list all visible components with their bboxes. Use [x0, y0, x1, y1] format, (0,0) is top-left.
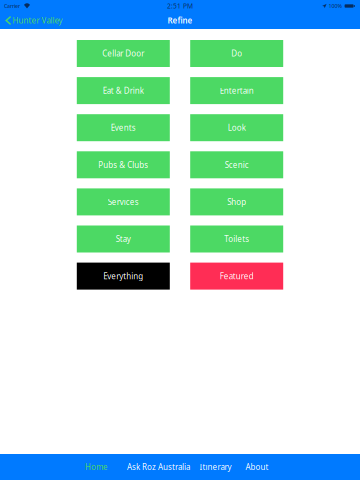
staticText: Eat & Drink [103, 85, 144, 96]
staticText: 100% [329, 2, 342, 10]
button[interactable]: Do [190, 40, 283, 67]
staticText: Services [108, 197, 139, 207]
staticText: Hunter Valley [13, 15, 63, 26]
staticText: Scenic [225, 159, 249, 170]
button[interactable]: About [236, 454, 278, 480]
button[interactable]: Entertain [190, 77, 283, 104]
button[interactable]: Services [77, 188, 170, 215]
staticText: Cellar Door [102, 48, 144, 59]
button[interactable]: Stay [77, 225, 170, 252]
staticText: Home [85, 462, 108, 472]
staticText: Everything [103, 271, 143, 281]
button[interactable]: Shop [190, 188, 283, 215]
button[interactable]: Home [65, 454, 128, 480]
button[interactable]: Scenic [190, 151, 283, 178]
staticText: Shop [227, 197, 246, 207]
button[interactable]: Toilets [190, 225, 283, 252]
staticText: Itinerary [199, 462, 231, 472]
staticText: 2:51 PM [167, 2, 193, 10]
button[interactable]: Cellar Door [77, 40, 170, 67]
staticText: Carrier [4, 2, 20, 10]
staticText: Do [231, 48, 242, 59]
staticText: Pubs & Clubs [98, 159, 148, 170]
staticText: Ask Roz Australia [127, 462, 190, 472]
button[interactable]: Eat & Drink [77, 77, 170, 104]
button[interactable]: Look [190, 114, 283, 141]
staticText: About [245, 462, 268, 472]
button[interactable]: Events [77, 114, 170, 141]
button[interactable]: Ask Roz Australia [127, 454, 190, 480]
button[interactable]: Itinerary [195, 454, 236, 480]
button[interactable]: Pubs & Clubs [77, 151, 170, 178]
button[interactable]: Featured [190, 263, 283, 290]
staticText: Look [228, 122, 246, 133]
staticText: Featured [220, 271, 254, 281]
button[interactable]: Everything [77, 263, 170, 290]
button[interactable]: Hunter Valley [0, 12, 69, 29]
staticText: Events [111, 122, 136, 133]
staticText: Entertain [220, 85, 254, 96]
staticText: Refine [167, 15, 192, 26]
staticText: Toilets [224, 234, 249, 244]
staticText: Stay [116, 234, 131, 244]
